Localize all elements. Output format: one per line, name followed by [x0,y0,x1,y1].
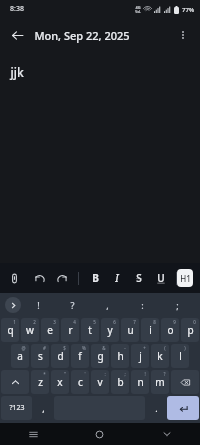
button[interactable]: Hide keyboard [133,423,200,445]
staticText: b [117,375,124,389]
staticText: & [102,345,106,351]
button[interactable]: m [151,370,169,394]
button[interactable]: p [181,318,199,342]
button[interactable]: f [71,344,89,368]
button[interactable]: s [31,344,49,368]
staticText: 0 [193,319,196,325]
button[interactable]: Home [66,423,133,445]
button[interactable]: b [111,370,129,394]
button[interactable]: c [71,370,89,394]
button[interactable]: z [31,370,49,394]
staticText: : [141,299,144,311]
staticText: 7 [133,319,136,325]
button[interactable]: r [61,318,79,342]
staticText: Mon, Sep 22, 2025 [34,28,130,43]
button[interactable]: Recent apps [0,423,66,445]
button[interactable]: u [121,318,139,342]
staticText: q [7,323,14,337]
button[interactable]: l [171,344,189,368]
button[interactable]: , [34,396,52,420]
staticText: 77% [182,6,194,14]
staticText: ! [144,371,146,377]
staticText: , [106,299,109,311]
button[interactable]: Redo [51,265,73,291]
staticText: $ [63,345,66,351]
staticText: z [38,375,43,389]
button[interactable]: g [91,344,109,368]
staticText: ! [37,299,40,311]
staticText: ) [184,345,186,351]
button[interactable]: ?123 [1,396,32,420]
button[interactable]: y [101,318,119,342]
staticText: S [136,271,142,285]
staticText: @ [21,345,26,351]
button[interactable]: , [90,293,125,317]
staticText: n [137,375,144,389]
staticText: p [187,323,194,337]
staticText: t [88,323,92,337]
button[interactable]: v [91,370,109,394]
staticText: r [68,323,73,337]
staticText: 8 [153,319,156,325]
button[interactable]: ? [55,293,90,317]
button[interactable]: Back [0,18,34,52]
button[interactable]: j [131,344,149,368]
staticText: c [78,375,83,389]
staticText: 4G [135,5,141,10]
button[interactable]: Expand toolbar [5,297,21,313]
staticText: d [57,349,64,363]
button[interactable]: q [1,318,19,342]
button[interactable]: e [41,318,59,342]
button[interactable]: Italic [106,265,128,291]
staticText: x [57,375,63,389]
staticText: . [155,402,158,414]
staticText: # [43,345,46,351]
button[interactable]: ; [160,293,195,317]
button[interactable]: More options [166,18,200,52]
staticText: m [155,375,165,389]
button[interactable]: Undo [29,265,51,291]
staticText: ; [176,299,179,311]
button[interactable]: Attach [3,265,25,291]
staticText: I [115,271,119,285]
staticText: 5 [93,319,96,325]
button[interactable]: o [161,318,179,342]
button[interactable]: Underline [150,265,172,291]
button[interactable]: : [125,293,160,317]
button[interactable]: t [81,318,99,342]
staticText: 3 [53,319,56,325]
staticText: f [78,349,82,363]
button[interactable]: Shift [1,370,29,394]
staticText: * [43,371,46,377]
staticText: y [107,323,113,337]
staticText: ? [70,299,75,311]
button[interactable]: x [51,370,69,394]
button[interactable]: . [147,396,165,420]
button[interactable]: Enter [167,396,199,420]
button[interactable]: w [21,318,39,342]
button[interactable]: n [131,370,149,394]
button[interactable]: a [11,344,29,368]
staticText: s [38,349,43,363]
button[interactable]: Backspace [171,370,199,394]
staticText: VoL [135,10,141,14]
button[interactable]: k [151,344,169,368]
staticText: l [179,349,182,363]
staticText: jjk [10,64,24,80]
staticText: : [104,371,106,377]
button[interactable]: ! [21,293,55,317]
button[interactable]: i [141,318,159,342]
button[interactable]: Bold [84,265,106,291]
staticText: ; [124,371,126,377]
staticText: B [92,271,99,285]
staticText: o [167,323,174,337]
button[interactable]: Strikethrough [128,265,150,291]
button[interactable]: Heading 1 [177,269,193,287]
staticText: 6 [113,319,116,325]
staticText: % [82,345,86,351]
button[interactable]: d [51,344,69,368]
staticText: - [124,345,126,351]
staticText: v [97,375,103,389]
button[interactable]: h [111,344,129,368]
